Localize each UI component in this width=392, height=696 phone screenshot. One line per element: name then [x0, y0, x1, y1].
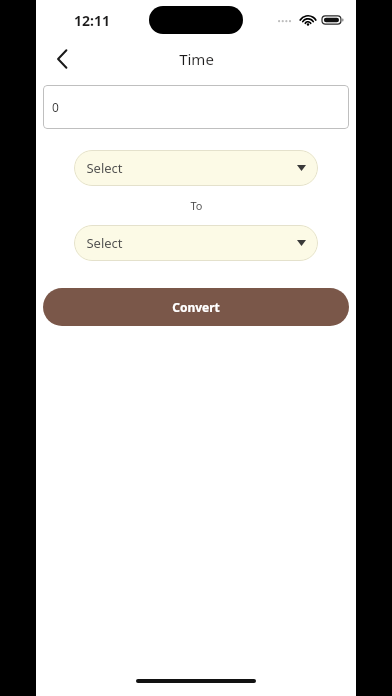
- button[interactable]: Select: [74, 225, 318, 261]
- button[interactable]: 0: [43, 85, 349, 129]
- staticText: Select: [86, 234, 123, 252]
- staticText: 12:11: [74, 11, 110, 30]
- button[interactable]: Convert: [43, 288, 349, 326]
- staticText: To: [190, 198, 203, 213]
- button[interactable]: Back: [44, 41, 80, 77]
- staticText: Select: [86, 159, 123, 177]
- staticText: Time: [179, 49, 214, 69]
- button[interactable]: Select: [74, 150, 318, 186]
- staticText: Convert: [172, 299, 220, 315]
- staticText: 0: [52, 99, 59, 115]
